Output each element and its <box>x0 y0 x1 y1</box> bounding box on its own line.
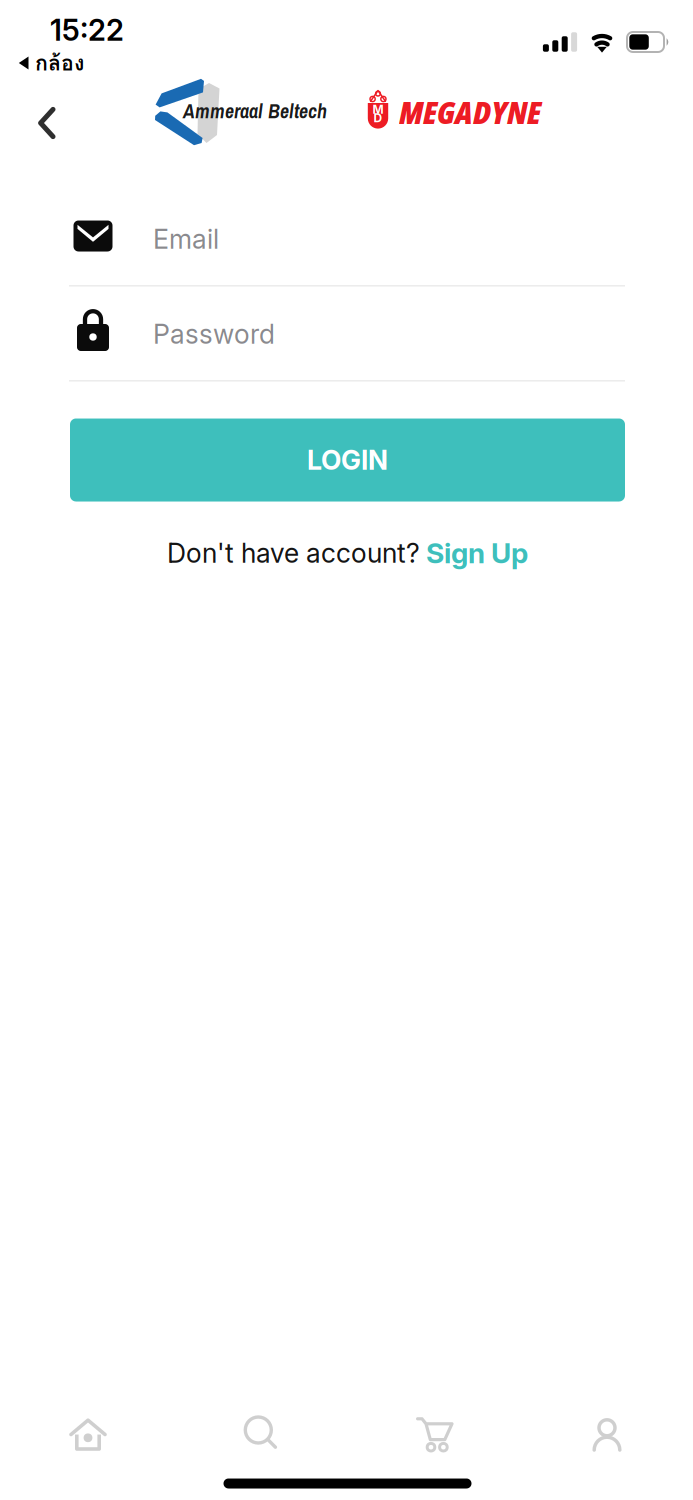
button[interactable]: LOGIN <box>70 418 625 501</box>
button[interactable]: Back <box>11 86 85 160</box>
staticText: Don't have account? <box>167 537 420 569</box>
staticText: LOGIN <box>307 444 388 476</box>
staticText: กล้อง <box>35 46 84 80</box>
button[interactable]: Cart <box>375 1397 495 1473</box>
button[interactable]: Home <box>28 1398 148 1474</box>
button[interactable]: Sign Up <box>426 533 566 573</box>
staticText: Sign Up <box>426 536 528 570</box>
staticText: Ammeraal Beltech <box>183 97 327 124</box>
staticText: M <box>372 102 383 117</box>
staticText: Email <box>153 223 219 255</box>
button[interactable]: Profile <box>547 1397 667 1473</box>
staticText: 15:22 <box>50 12 124 48</box>
staticText: Password <box>153 318 275 350</box>
staticText: MEGADYNE <box>399 91 541 133</box>
button[interactable]: Search <box>201 1395 321 1471</box>
staticText: D <box>373 111 382 125</box>
